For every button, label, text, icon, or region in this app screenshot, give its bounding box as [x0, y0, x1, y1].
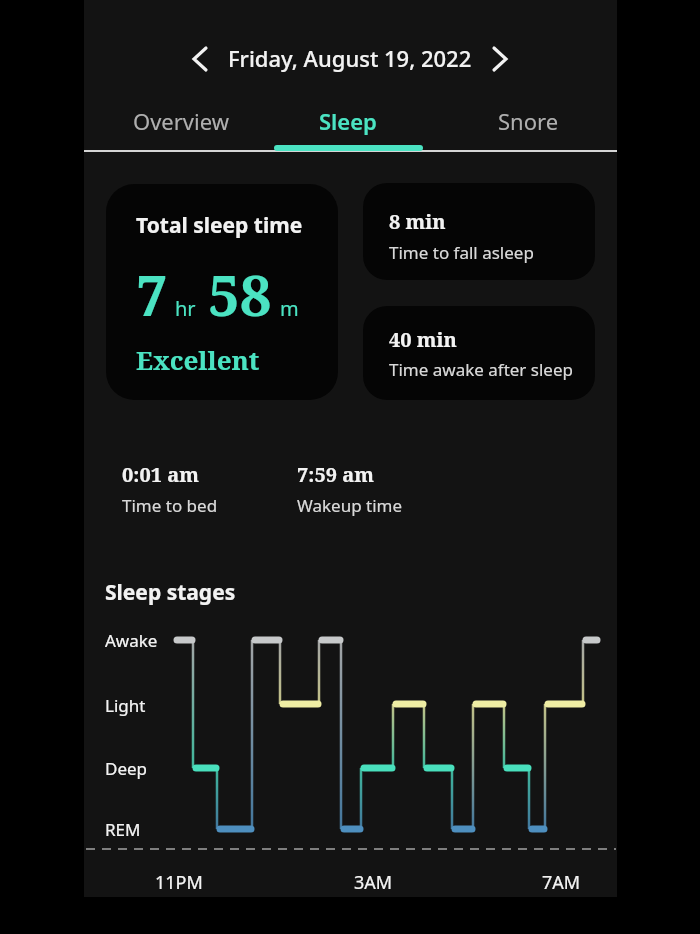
staticText: Snore — [498, 106, 559, 136]
staticText: Sleep stages — [105, 578, 236, 607]
button[interactable] — [184, 42, 216, 76]
staticText: 11PM — [155, 870, 203, 895]
staticText: Time awake after sleep — [389, 358, 573, 381]
button[interactable]: 40 min — [363, 306, 595, 400]
staticText: Wakeup time — [297, 494, 403, 517]
staticText: Time to fall asleep — [389, 241, 534, 264]
staticText: 8 min — [389, 208, 446, 235]
button[interactable]: Snore — [458, 96, 598, 146]
staticText: 7AM — [542, 870, 581, 895]
staticText: 3AM — [354, 870, 393, 895]
staticText: 40 min — [389, 326, 457, 353]
staticText: hr — [175, 295, 196, 322]
staticText: Awake — [105, 629, 158, 652]
staticText: 58 — [208, 256, 272, 332]
button[interactable]: Sleep — [278, 96, 418, 146]
staticText: Total sleep time — [136, 211, 303, 240]
staticText: Excellent — [136, 342, 260, 377]
staticText: 0:01 am — [122, 461, 199, 488]
staticText: REM — [105, 818, 141, 841]
staticText: Light — [105, 694, 146, 717]
staticText: 7:59 am — [297, 461, 374, 488]
staticText: Time to bed — [122, 494, 218, 517]
staticText: 7 — [136, 256, 168, 332]
button[interactable]: 8 min — [363, 183, 595, 280]
button[interactable] — [484, 42, 516, 76]
staticText: Deep — [105, 757, 148, 780]
staticText: Sleep — [319, 106, 377, 136]
button[interactable]: Total sleep time — [106, 184, 338, 400]
staticText: m — [280, 295, 299, 322]
staticText: Friday, August 19, 2022 — [228, 43, 472, 73]
staticText: Overview — [133, 106, 229, 136]
button[interactable]: Overview — [111, 96, 251, 146]
